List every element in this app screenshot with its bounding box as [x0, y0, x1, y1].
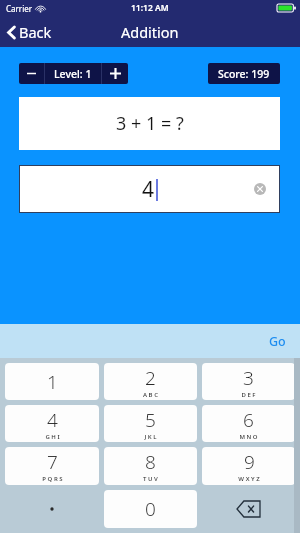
- button[interactable]: Score: 199: [208, 63, 280, 84]
- staticText: D E F: [241, 391, 256, 399]
- button[interactable]: Increase level: [102, 63, 128, 84]
- staticText: J K L: [144, 433, 157, 441]
- staticText: W X Y Z: [238, 475, 260, 483]
- button[interactable]: 4: [19, 165, 280, 213]
- staticText: T U V: [143, 475, 158, 483]
- staticText: 4: [47, 407, 58, 433]
- staticText: A B C: [143, 391, 158, 399]
- staticText: 5: [145, 407, 156, 433]
- button[interactable]: Decrease level: [19, 63, 44, 84]
- button[interactable]: Backspace: [202, 490, 295, 528]
- staticText: Score: 199: [218, 67, 270, 81]
- button[interactable]: 2: [104, 363, 197, 400]
- staticText: 6: [243, 407, 254, 433]
- staticText: 2: [145, 365, 156, 391]
- button[interactable]: [5, 490, 99, 528]
- staticText: M N O: [239, 433, 258, 441]
- staticText: Level: 1: [54, 67, 92, 81]
- staticText: 0: [145, 496, 156, 522]
- button[interactable]: 9: [202, 447, 295, 485]
- button[interactable]: 7: [5, 447, 99, 485]
- staticText: G H I: [45, 433, 60, 441]
- staticText: 4: [142, 175, 155, 204]
- staticText: Back: [19, 22, 52, 42]
- staticText: Carrier: [6, 3, 33, 14]
- button[interactable]: 0: [104, 490, 197, 528]
- button[interactable]: 8: [104, 447, 197, 485]
- button[interactable]: 6: [202, 405, 295, 442]
- staticText: Go: [269, 333, 286, 350]
- staticText: 8: [145, 449, 156, 475]
- staticText: P Q R S: [42, 475, 63, 483]
- button[interactable]: 5: [104, 405, 197, 442]
- button[interactable]: Level: 1: [45, 63, 101, 84]
- button[interactable]: Clear text: [250, 179, 270, 199]
- staticText: 11:12 AM: [131, 2, 169, 14]
- staticText: Addition: [121, 22, 179, 42]
- button[interactable]: Go: [255, 327, 300, 356]
- staticText: 9: [244, 449, 255, 475]
- button[interactable]: 3: [202, 363, 295, 400]
- staticText: 7: [47, 449, 58, 475]
- button[interactable]: 1: [5, 363, 99, 400]
- staticText: 3 + 1 = ?: [116, 111, 184, 136]
- button[interactable]: Back: [0, 18, 62, 46]
- staticText: 1: [47, 369, 58, 395]
- button[interactable]: 4: [5, 405, 99, 442]
- staticText: 3: [243, 365, 254, 391]
